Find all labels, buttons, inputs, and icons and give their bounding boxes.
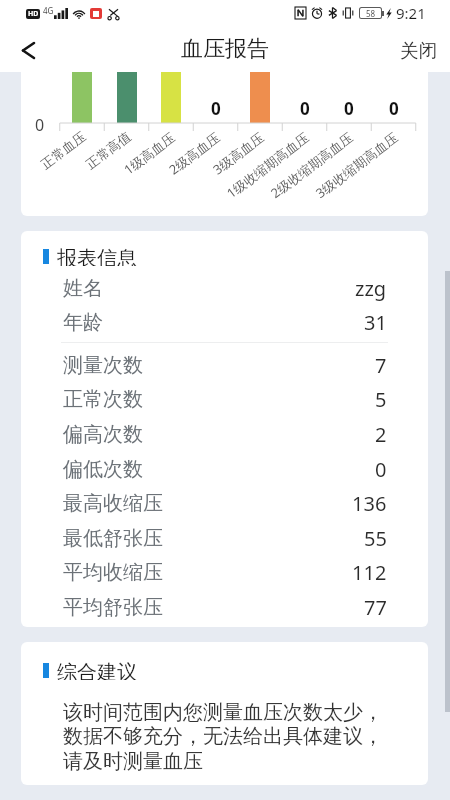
staticText: 0 — [344, 97, 354, 120]
button[interactable]: 平均收缩压 — [21, 559, 428, 585]
button[interactable]: 年龄 — [21, 309, 428, 335]
staticText: 正常高值 — [82, 128, 134, 172]
staticText: 血压报告 — [181, 35, 269, 63]
staticText: 测量次数 — [63, 353, 143, 378]
staticText: 112 — [352, 559, 387, 585]
staticText: 偏高次数 — [63, 422, 143, 447]
staticText: 正常血压 — [37, 128, 89, 172]
staticText: HD — [28, 9, 39, 19]
staticText: 综合建议 — [57, 660, 137, 680]
staticText: 77 — [364, 594, 387, 620]
staticText: 平均舒张压 — [63, 595, 163, 620]
staticText: 3级高血压 — [209, 128, 268, 178]
staticText: 最高收缩压 — [63, 491, 163, 516]
staticText: 9:21 — [396, 3, 426, 23]
staticText: 2级收缩期高血压 — [267, 128, 357, 202]
staticText: 2级高血压 — [165, 128, 224, 178]
staticText: 3级收缩期高血压 — [312, 128, 402, 202]
staticText: 4G — [43, 5, 54, 16]
staticText: 5 — [375, 386, 387, 412]
staticText: 0 — [389, 97, 399, 120]
staticText: 平均收缩压 — [63, 560, 163, 585]
button[interactable]: 正常次数 — [21, 386, 428, 412]
staticText: 该时间范围内您测量血压次数太少， 数据不够充分，无法给出具体建议， 请及时测量血… — [63, 700, 383, 774]
button[interactable]: 测量次数 — [21, 352, 428, 378]
staticText: 136 — [352, 490, 387, 516]
staticText: 0 — [300, 97, 310, 120]
staticText: 31 — [364, 309, 387, 335]
staticText: 55 — [364, 525, 387, 551]
staticText: 0 — [35, 114, 45, 136]
staticText: 1级收缩期高血压 — [223, 128, 313, 202]
staticText: 0 — [211, 97, 221, 120]
button[interactable]: 最高收缩压 — [21, 490, 428, 516]
staticText: 0 — [375, 456, 387, 482]
staticText: 偏低次数 — [63, 457, 143, 482]
button[interactable]: 最低舒张压 — [21, 525, 428, 551]
staticText: 姓名 — [63, 276, 103, 301]
button[interactable]: 平均舒张压 — [21, 594, 428, 620]
staticText: zzg — [355, 275, 387, 301]
staticText: 最低舒张压 — [63, 526, 163, 551]
staticText: 58 — [366, 8, 376, 18]
button[interactable]: 姓名 — [21, 275, 428, 301]
staticText: 2 — [375, 421, 387, 447]
staticText: 7 — [375, 352, 387, 378]
staticText: 正常次数 — [63, 387, 143, 412]
button[interactable]: Back — [0, 26, 54, 72]
button[interactable]: 偏低次数 — [21, 456, 428, 482]
button[interactable]: 偏高次数 — [21, 421, 428, 447]
staticText: 报表信息 — [57, 246, 137, 266]
staticText: 年龄 — [63, 310, 103, 335]
button[interactable]: 关闭 — [384, 26, 450, 72]
staticText: 关闭 — [400, 39, 437, 62]
staticText: 1级高血压 — [120, 128, 179, 178]
